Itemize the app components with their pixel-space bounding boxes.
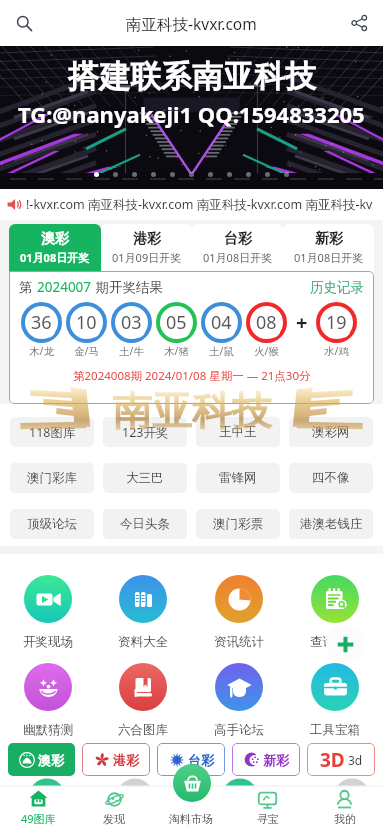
staticText: 01月09日开奖 (112, 250, 182, 265)
button[interactable]: 台彩 (157, 743, 225, 776)
button[interactable]: 118图库 (10, 417, 94, 447)
button[interactable]: 澳彩 (8, 743, 75, 776)
staticText: 淘料市场 (169, 812, 213, 826)
button[interactable]: 资料大全 (95, 575, 191, 650)
staticText: 今日头条 (120, 516, 170, 532)
staticText: 新彩 (263, 752, 289, 768)
staticText: 土/牛 (119, 344, 144, 358)
staticText: 3D (320, 747, 345, 773)
staticText: 05 (166, 310, 187, 335)
staticText: 第2024008期 2024/01/08 星期一 — 21点30分 (73, 368, 311, 384)
staticText: 寻宝 (257, 812, 279, 826)
staticText: 南亚科技 (112, 386, 272, 436)
button[interactable]: 港彩 (82, 743, 150, 776)
staticText: 01月08日开奖 (203, 250, 273, 265)
button[interactable]: 幽默猜测 (0, 663, 95, 738)
staticText: 资料大全 (118, 634, 168, 650)
button[interactable]: 3D (307, 743, 375, 776)
button[interactable]: 淘料市场 (173, 764, 211, 802)
staticText: 期开奖结果 (92, 278, 164, 296)
staticText: 港彩 (133, 230, 161, 248)
button[interactable]: 查询助手 (287, 575, 383, 650)
staticText: 新彩 (315, 230, 343, 248)
staticText: 幽默猜测 (23, 722, 73, 738)
button[interactable]: 澳门彩票 (196, 509, 280, 539)
staticText: 六合图库 (118, 722, 168, 738)
staticText: 开奖现场 (23, 634, 73, 650)
staticText: 第 (19, 278, 37, 296)
button[interactable]: 新彩 (283, 224, 374, 271)
staticText: 顶级论坛 (27, 516, 77, 532)
button[interactable]: 高手论坛 (191, 663, 287, 738)
button[interactable]: Share (335, 0, 383, 46)
button[interactable]: 淘料市场 (152, 786, 229, 829)
staticText: TG:@nanyakeji1 QQ:1594833205 (18, 99, 365, 129)
button[interactable]: 大三巴 (103, 463, 187, 493)
button[interactable]: 六合图库 (95, 663, 191, 738)
button[interactable]: 49图库 (0, 786, 76, 829)
staticText: 雷锋网 (219, 470, 257, 486)
staticText: 123开奖 (122, 424, 169, 441)
staticText: 港澳老钱庄 (300, 516, 363, 532)
button[interactable]: 今日头条 (103, 509, 187, 539)
staticText: 大三巴 (126, 470, 164, 486)
staticText: 南亚科技-kvxr.com (126, 13, 257, 34)
staticText: 49图库 (21, 811, 56, 826)
staticText: 搭建联系南亚科技 (68, 57, 316, 96)
staticText: + (296, 309, 308, 336)
staticText: 港彩 (113, 752, 139, 768)
staticText: 我的 (334, 812, 356, 826)
staticText: 历史记录 (310, 279, 364, 296)
button[interactable]: 台彩 (192, 224, 283, 271)
button[interactable]: 开奖现场 (0, 575, 95, 650)
staticText: 台彩 (188, 752, 214, 768)
staticText: 01月08日开奖 (20, 250, 90, 265)
button[interactable]: 王中王 (196, 417, 280, 447)
staticText: 台彩 (224, 230, 252, 248)
staticText: 36 (31, 310, 52, 335)
button[interactable]: 澳门彩库 (10, 463, 94, 493)
staticText: 火/猴 (254, 344, 279, 358)
staticText: 工具宝箱 (310, 722, 360, 738)
staticText: 2024007 (37, 278, 92, 296)
staticText: 查询助手 (310, 634, 360, 650)
staticText: 土/鼠 (209, 344, 234, 358)
button[interactable]: 港澳老钱庄 (289, 509, 373, 539)
button[interactable]: 新彩 (232, 743, 300, 776)
staticText: 澳彩网 (312, 424, 350, 440)
staticText: 高手论坛 (214, 722, 264, 738)
staticText: 03 (121, 310, 142, 335)
button[interactable]: 四不像 (289, 463, 373, 493)
button[interactable]: 寻宝 (229, 786, 306, 829)
staticText: 10 (76, 310, 97, 335)
button[interactable]: 123开奖 (103, 417, 187, 447)
staticText: 118图库 (29, 424, 76, 441)
staticText: 木/猪 (164, 344, 189, 358)
staticText: 澳彩 (38, 752, 64, 768)
button[interactable]: Add (326, 625, 364, 663)
staticText: 08 (256, 310, 277, 335)
staticText: 澳门彩库 (27, 470, 77, 486)
button[interactable]: 发现 (76, 786, 152, 829)
button[interactable]: 港彩 (101, 224, 192, 271)
staticText: 澳彩 (41, 230, 69, 248)
button[interactable]: 澳彩网 (289, 417, 373, 447)
button[interactable]: 历史记录 (310, 279, 364, 296)
button[interactable]: 雷锋网 (196, 463, 280, 493)
staticText: 澳门彩票 (213, 516, 263, 532)
button[interactable]: 澳彩 (9, 224, 101, 271)
staticText: 01月08日开奖 (294, 250, 364, 265)
staticText: 发现 (103, 812, 125, 826)
button[interactable]: 资讯统计 (191, 575, 287, 650)
staticText: 19 (326, 310, 347, 335)
staticText: 木/龙 (29, 344, 54, 358)
staticText: 04 (211, 310, 232, 335)
button[interactable]: 工具宝箱 (287, 663, 383, 738)
button[interactable]: 我的 (306, 786, 383, 829)
staticText: !-kvxr.com 南亚科技-kvxr.com 南亚科技-kvxr.com 南… (26, 196, 373, 213)
staticText: 3d (348, 752, 363, 768)
staticText: 四不像 (312, 470, 350, 486)
staticText: 资讯统计 (214, 634, 264, 650)
button[interactable]: 顶级论坛 (10, 509, 94, 539)
button[interactable]: Search (0, 0, 48, 46)
